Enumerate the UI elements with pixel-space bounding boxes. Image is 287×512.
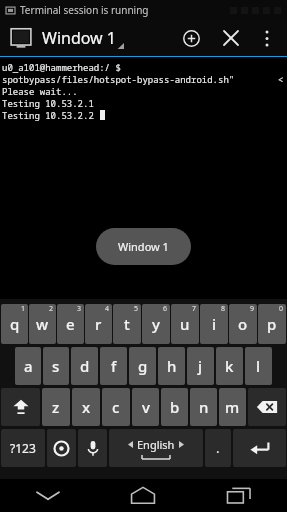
staticText: 2 xyxy=(49,304,54,314)
button[interactable]: n xyxy=(190,388,217,426)
staticText: t xyxy=(124,314,130,334)
button[interactable]: Enter xyxy=(233,429,286,467)
staticText: 0 xyxy=(279,304,284,314)
button[interactable]: l xyxy=(245,347,272,385)
staticText: Window 1 xyxy=(42,27,116,49)
staticText: e xyxy=(66,314,75,334)
staticText: w xyxy=(36,314,49,334)
button[interactable]: Home xyxy=(95,479,191,512)
button[interactable]: Voice input xyxy=(78,429,107,467)
button[interactable]: s xyxy=(43,347,69,385)
button[interactable]: p xyxy=(258,304,286,344)
staticText: u0_a101@hammerhead:/ $ xyxy=(2,61,121,73)
button[interactable]: o xyxy=(229,304,257,344)
staticText: l xyxy=(256,356,261,376)
staticText: 5 xyxy=(134,304,139,314)
button[interactable]: r xyxy=(85,304,112,344)
staticText: Please wait... xyxy=(2,85,78,97)
staticText: 1 xyxy=(21,304,26,314)
button[interactable]: f xyxy=(100,347,127,385)
button[interactable]: Symbols xyxy=(1,429,45,467)
staticText: q xyxy=(10,314,20,334)
staticText: z xyxy=(52,397,60,417)
button[interactable]: Space xyxy=(109,429,203,467)
button[interactable]: c xyxy=(102,388,130,426)
button[interactable]: q xyxy=(1,304,28,344)
staticText: p xyxy=(267,314,277,334)
button[interactable]: a xyxy=(15,347,41,385)
staticText: ?123 xyxy=(10,440,36,456)
button[interactable]: Window 1 xyxy=(96,228,191,265)
staticText: 7 xyxy=(192,304,197,314)
button[interactable]: Hide keyboard xyxy=(0,479,95,512)
staticText: y xyxy=(152,314,160,334)
staticText: f xyxy=(111,356,117,376)
button[interactable]: w xyxy=(29,304,56,344)
staticText: d xyxy=(80,356,90,376)
button[interactable]: v xyxy=(132,388,159,426)
staticText: Window 1 xyxy=(118,239,169,254)
staticText: o xyxy=(238,314,248,334)
button[interactable]: Shift xyxy=(1,388,40,426)
staticText: u xyxy=(180,314,190,334)
button[interactable]: t xyxy=(113,304,141,344)
staticText: 4 xyxy=(105,304,110,314)
button[interactable]: New window xyxy=(171,20,211,56)
staticText: r xyxy=(95,314,102,334)
staticText: spotbypass/files/hotspot-bypass-android.… xyxy=(2,73,235,85)
button[interactable]: u xyxy=(171,304,199,344)
staticText: k xyxy=(225,356,234,376)
button[interactable]: m xyxy=(219,388,246,426)
button[interactable]: g xyxy=(129,347,156,385)
staticText: x xyxy=(82,397,91,417)
staticText: 8 xyxy=(221,304,226,314)
button[interactable]: Window 1 xyxy=(42,27,124,49)
button[interactable]: e xyxy=(57,304,84,344)
staticText: . xyxy=(216,439,220,457)
staticText: g xyxy=(138,356,148,376)
button[interactable]: j xyxy=(187,347,214,385)
staticText: b xyxy=(170,397,180,417)
button[interactable]: Emoji xyxy=(47,429,76,467)
staticText: 3 xyxy=(77,304,82,314)
staticText: English xyxy=(137,437,175,452)
staticText: c xyxy=(112,397,120,417)
staticText: a xyxy=(24,356,33,376)
button[interactable]: k xyxy=(216,347,243,385)
staticText: Testing 10.53.2.2 xyxy=(2,109,100,121)
staticText: n xyxy=(199,397,209,417)
button[interactable]: Recent apps xyxy=(191,479,287,512)
button[interactable]: y xyxy=(142,304,170,344)
button[interactable]: Close window xyxy=(211,20,251,56)
staticText: j xyxy=(198,356,203,376)
staticText: 9 xyxy=(250,304,255,314)
button[interactable]: b xyxy=(161,388,188,426)
staticText: Terminal session is running xyxy=(20,3,149,17)
staticText: s xyxy=(52,356,60,376)
button[interactable]: z xyxy=(42,388,70,426)
staticText: < xyxy=(278,73,284,85)
button[interactable]: d xyxy=(71,347,98,385)
staticText: 6 xyxy=(163,304,168,314)
button[interactable]: h xyxy=(158,347,185,385)
button[interactable]: i xyxy=(200,304,228,344)
staticText: Testing 10.53.2.1 xyxy=(2,97,94,109)
staticText: v xyxy=(142,397,150,417)
staticText: h xyxy=(167,356,177,376)
button[interactable]: Period xyxy=(205,429,231,467)
button[interactable]: More options xyxy=(251,22,283,54)
button[interactable]: Terminal window icon xyxy=(10,27,32,49)
button[interactable]: x xyxy=(72,388,100,426)
staticText: m xyxy=(225,397,240,417)
button[interactable]: Backspace xyxy=(248,388,286,426)
staticText: i xyxy=(212,314,217,334)
